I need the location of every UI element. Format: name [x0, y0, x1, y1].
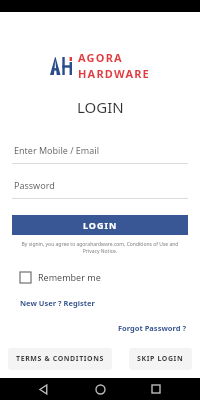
- staticText: Enter Mobile / Email: [14, 144, 99, 156]
- button[interactable]: Enter Mobile / Email: [0, 137, 200, 172]
- staticText: New User ? Register: [20, 298, 95, 308]
- staticText: HARDWARE: [78, 66, 150, 81]
- staticText: Password: [14, 179, 55, 191]
- button[interactable]: Password: [0, 172, 200, 207]
- button[interactable]: Home: [88, 378, 112, 400]
- staticText: TERMS & CONDITIONS: [16, 354, 104, 364]
- staticText: LOGIN: [83, 219, 118, 231]
- button[interactable]: Remember me: [20, 271, 101, 283]
- staticText: By signin, you agree to agorahardware.co…: [14, 241, 186, 255]
- button[interactable]: Back: [32, 378, 56, 400]
- button[interactable]: LOGIN: [12, 215, 188, 235]
- button[interactable]: SKIP LOGIN: [129, 348, 192, 370]
- staticText: SKIP LOGIN: [137, 354, 184, 364]
- button[interactable]: TERMS & CONDITIONS: [8, 348, 112, 370]
- staticText: Forgot Password ?: [118, 323, 186, 333]
- button[interactable]: New User ? Register: [20, 298, 95, 308]
- staticText: Remember me: [38, 271, 101, 283]
- button[interactable]: Forgot Password ?: [118, 323, 186, 333]
- button[interactable]: Recent apps: [144, 378, 168, 400]
- staticText: AGORA: [78, 50, 123, 65]
- staticText: LOGIN: [77, 97, 124, 117]
